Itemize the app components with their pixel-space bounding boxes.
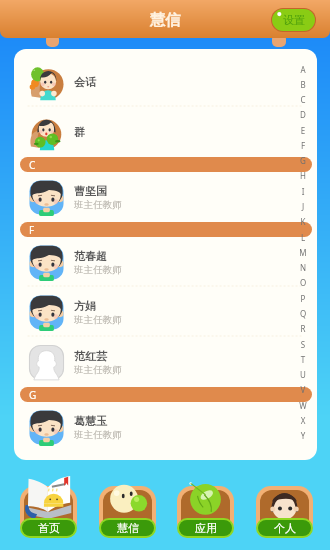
staticText: 慧信 xyxy=(0,11,330,30)
button[interactable]: N xyxy=(298,262,308,273)
staticText: 班主任教师 xyxy=(74,199,122,211)
staticText: C xyxy=(29,158,36,172)
staticText: 班主任教师 xyxy=(74,429,122,441)
button[interactable]: J xyxy=(298,201,308,212)
staticText: 范红芸 xyxy=(74,349,107,363)
staticText: 设置 xyxy=(283,13,305,27)
staticText: 会话 xyxy=(74,75,96,89)
staticText: 群 xyxy=(74,125,85,139)
button[interactable]: X xyxy=(298,415,308,426)
button[interactable]: O xyxy=(298,277,308,288)
button[interactable]: M xyxy=(298,247,308,258)
button[interactable]: L xyxy=(298,232,308,243)
staticText: 个人 xyxy=(274,521,296,535)
button[interactable]: G xyxy=(298,155,308,166)
staticText: F xyxy=(29,223,35,237)
button[interactable]: C xyxy=(298,94,308,105)
button[interactable]: U xyxy=(298,369,308,380)
button[interactable]: S xyxy=(298,339,308,350)
button[interactable]: A xyxy=(298,64,308,75)
button[interactable]: 会话 xyxy=(14,57,317,107)
button[interactable]: V xyxy=(298,384,308,395)
button[interactable]: T xyxy=(298,354,308,365)
staticText: G xyxy=(29,388,37,402)
button[interactable]: 慧信 xyxy=(99,472,156,538)
button[interactable]: P xyxy=(298,293,308,304)
button[interactable]: B xyxy=(298,79,308,90)
staticText: 应用 xyxy=(195,521,217,535)
button[interactable]: 葛慧玉 xyxy=(14,402,317,452)
staticText: 班主任教师 xyxy=(74,364,122,376)
button[interactable]: I xyxy=(298,186,308,197)
staticText: 首页 xyxy=(38,521,60,535)
button[interactable]: H xyxy=(298,170,308,181)
button[interactable]: 应用 xyxy=(177,472,234,538)
staticText: 方娟 xyxy=(74,299,96,313)
staticText: 葛慧玉 xyxy=(74,414,107,428)
staticText: 曹坚国 xyxy=(74,184,107,198)
button[interactable]: R xyxy=(298,323,308,334)
button[interactable]: 范红芸 xyxy=(14,337,317,387)
button[interactable]: D xyxy=(298,109,308,120)
staticText: 慧信 xyxy=(117,521,139,535)
button[interactable]: 设置 xyxy=(272,9,315,31)
staticText: 班主任教师 xyxy=(74,314,122,326)
button[interactable]: 个人 xyxy=(256,472,313,538)
button[interactable]: Y xyxy=(298,430,308,441)
staticText: 班主任教师 xyxy=(74,264,122,276)
button[interactable]: 范春超 xyxy=(14,237,317,287)
button[interactable]: W xyxy=(298,400,308,411)
button[interactable]: E xyxy=(298,125,308,136)
button[interactable]: 群 xyxy=(14,107,317,157)
staticText: 范春超 xyxy=(74,249,107,263)
button[interactable]: Q xyxy=(298,308,308,319)
button[interactable]: 曹坚国 xyxy=(14,172,317,222)
button[interactable]: F xyxy=(298,140,308,151)
button[interactable]: 方娟 xyxy=(14,287,317,337)
button[interactable]: K xyxy=(298,216,308,227)
button[interactable]: 首页 xyxy=(20,472,77,538)
